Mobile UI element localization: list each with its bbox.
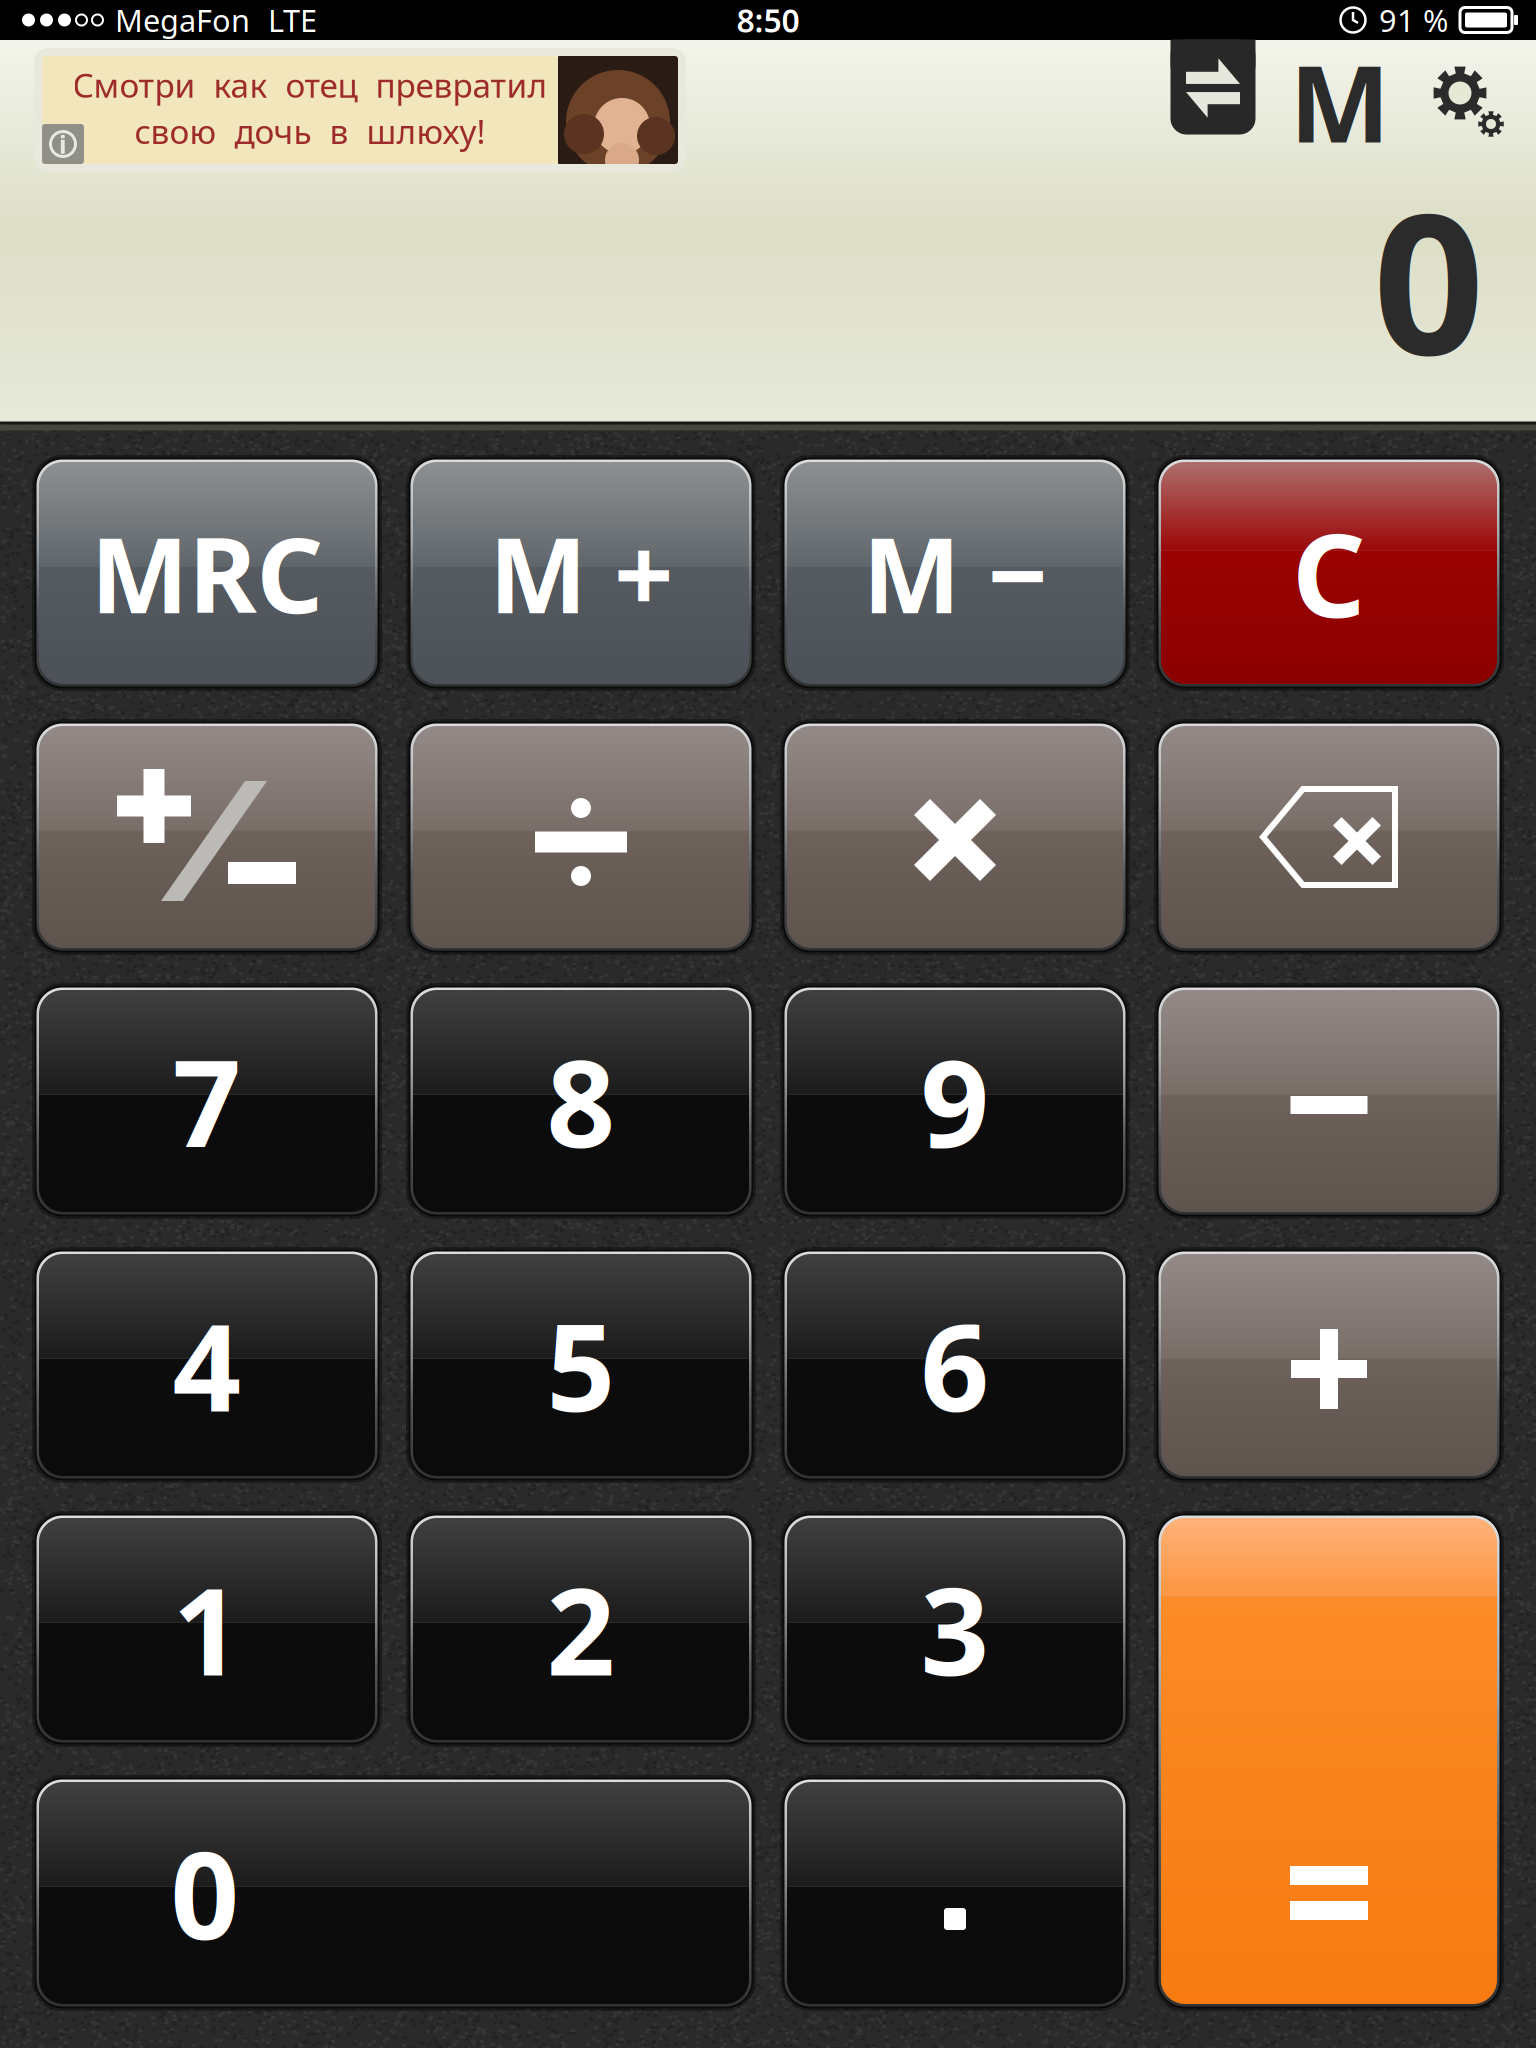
staticText: 0: [170, 1813, 239, 1973]
button[interactable]: 2: [413, 1518, 749, 1740]
staticText: 0: [1373, 150, 1484, 408]
button[interactable]: [787, 726, 1123, 948]
button[interactable]: [787, 1782, 1123, 2004]
button[interactable]: M: [1285, 49, 1395, 153]
staticText: 2: [546, 1549, 615, 1709]
button[interactable]: C: [1161, 462, 1497, 684]
staticText: свою дочь в шлюху!: [134, 109, 485, 153]
staticText: Смотри как отец превратил: [72, 63, 547, 107]
button[interactable]: 0: [39, 1782, 749, 2004]
button[interactable]: M +: [413, 462, 749, 684]
staticText: 9: [920, 1021, 989, 1181]
staticText: M: [1289, 30, 1390, 172]
button[interactable]: 5: [413, 1254, 749, 1476]
staticText: i: [59, 127, 67, 161]
staticText: MegaFon: [115, 0, 250, 40]
staticText: LTE: [268, 0, 317, 40]
button[interactable]: Swap: [1170, 39, 1255, 134]
staticText: 4: [172, 1285, 241, 1445]
button[interactable]: 7: [39, 990, 375, 1212]
button[interactable]: 8: [413, 990, 749, 1212]
staticText: 5: [546, 1285, 615, 1445]
button[interactable]: 1: [39, 1518, 375, 1740]
staticText: 3: [920, 1549, 989, 1709]
button[interactable]: MRC: [39, 462, 375, 684]
button[interactable]: [1161, 1518, 1497, 2004]
staticText: M −: [862, 504, 1047, 642]
button[interactable]: [1161, 990, 1497, 1212]
button[interactable]: [1161, 726, 1497, 948]
staticText: MRC: [90, 504, 323, 642]
staticText: M +: [489, 504, 673, 642]
button[interactable]: 6: [787, 1254, 1123, 1476]
button[interactable]: 4: [39, 1254, 375, 1476]
button[interactable]: [1161, 1254, 1497, 1476]
staticText: 8: [546, 1021, 615, 1181]
staticText: 6: [920, 1285, 989, 1445]
button[interactable]: M −: [787, 462, 1123, 684]
button[interactable]: Settings: [1411, 39, 1521, 149]
button[interactable]: [39, 726, 375, 948]
button[interactable]: [413, 726, 749, 948]
staticText: 8:50: [736, 0, 799, 41]
staticText: 1: [172, 1549, 241, 1709]
button[interactable]: 3: [787, 1518, 1123, 1740]
button[interactable]: 9: [787, 990, 1123, 1212]
staticText: 91 %: [1379, 0, 1448, 40]
staticText: 7: [172, 1021, 241, 1181]
button[interactable]: Advertisement: [34, 48, 686, 172]
staticText: C: [1292, 497, 1366, 649]
